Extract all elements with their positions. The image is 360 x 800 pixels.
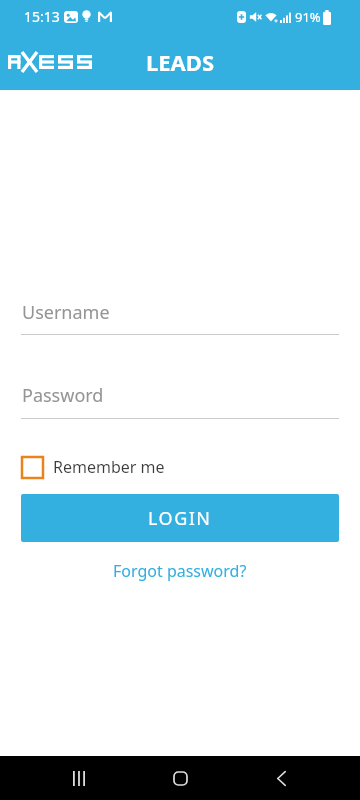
staticText: 91% (295, 8, 321, 26)
button[interactable]: LOGIN (21, 494, 339, 542)
button[interactable] (241, 756, 321, 800)
staticText: 15:13 (24, 7, 60, 26)
staticText: Remember me (53, 456, 165, 478)
button[interactable]: Remember me (22, 456, 165, 478)
button[interactable] (140, 756, 220, 800)
button[interactable]: Forgot password? (113, 560, 247, 582)
staticText: Password (22, 383, 104, 408)
button[interactable] (39, 756, 119, 800)
staticText: LEADS (146, 47, 215, 77)
staticText: Username (22, 300, 110, 325)
staticText: Forgot password? (113, 560, 247, 582)
staticText: LOGIN (148, 506, 212, 531)
